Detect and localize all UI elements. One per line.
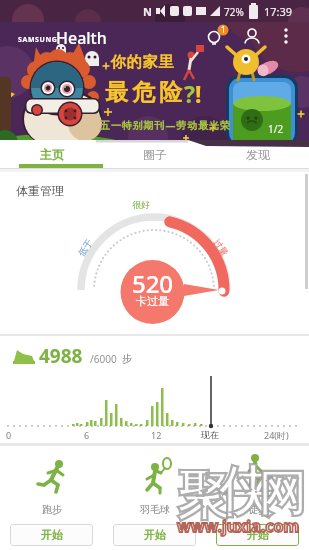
staticText: 聚 — [177, 464, 229, 530]
staticText: 侠 — [219, 458, 273, 526]
button[interactable] — [240, 24, 264, 48]
staticText: 网 — [258, 464, 306, 524]
staticText: 最危险 — [103, 78, 184, 107]
staticText: 很好 — [132, 199, 150, 210]
staticText: 体重管理 — [16, 183, 64, 198]
button[interactable]: 羽毛球 — [103, 446, 206, 550]
staticText: 跑步 — [42, 503, 62, 516]
staticText: SAMSUNG — [18, 35, 58, 45]
staticText: 开始 — [41, 528, 63, 542]
staticText: 低于 — [75, 237, 95, 258]
staticText: 1/2 — [268, 122, 284, 136]
staticText: N — [143, 4, 152, 19]
staticText: /6000 — [90, 352, 117, 366]
staticText: 开始 — [247, 528, 269, 542]
staticText: 17:39 — [264, 4, 293, 19]
staticText: www.juxia.com — [177, 515, 300, 537]
staticText: 520 — [120, 267, 185, 300]
staticText: 圈子 — [143, 147, 167, 162]
staticText: 发现 — [246, 147, 270, 162]
staticText: 过量 — [211, 237, 231, 258]
button[interactable]: 圈子 — [103, 140, 206, 168]
staticText: 五一特别期刊—劳动最光荣 — [100, 118, 231, 132]
button[interactable]: 跑步 — [0, 446, 103, 550]
button[interactable] — [276, 24, 296, 48]
staticText: 4988 — [39, 343, 83, 369]
button[interactable]: 主页 — [0, 140, 103, 168]
staticText: 卡过量 — [120, 294, 185, 308]
staticText: 网 — [258, 464, 306, 524]
staticText: 12 — [151, 429, 162, 441]
staticText: Health — [56, 27, 107, 49]
staticText: 主页 — [40, 147, 64, 162]
button[interactable] — [0, 172, 309, 334]
staticText: 72% — [224, 5, 244, 19]
staticText: 24(时) — [264, 429, 289, 441]
button[interactable]: 开始 — [113, 524, 196, 546]
staticText: 1 — [221, 24, 226, 35]
staticText: 现在 — [201, 429, 219, 440]
staticText: 6 — [84, 429, 90, 441]
staticText: 徒步 — [248, 503, 268, 516]
button[interactable]: 开始 — [216, 524, 299, 546]
staticText: 聚 — [177, 464, 229, 530]
staticText: 侠 — [219, 458, 273, 526]
button[interactable]: 开始 — [10, 524, 93, 546]
button[interactable]: SAMSUNG — [0, 22, 309, 140]
staticText: 羽毛球 — [140, 503, 170, 516]
staticText: 0 — [6, 429, 12, 441]
staticText: 步 — [122, 352, 132, 365]
staticText: 开始 — [144, 528, 166, 542]
staticText: 你的家里 — [110, 53, 174, 72]
button[interactable]: 发现 — [206, 140, 309, 168]
button[interactable]: 徒步 — [206, 446, 309, 550]
staticText: ? — [184, 78, 195, 109]
button[interactable]: 1 — [205, 24, 233, 48]
button[interactable] — [0, 336, 309, 443]
staticText: www.juxia.com — [177, 515, 300, 537]
staticText: ! — [195, 78, 202, 109]
